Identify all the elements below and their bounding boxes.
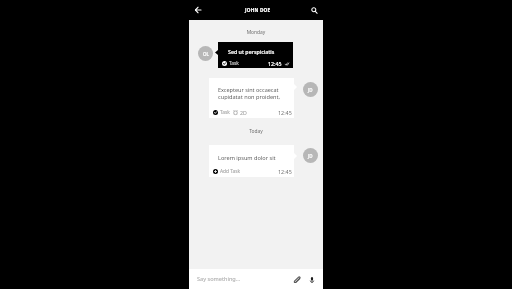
staticText: Excepteur sint occaecat <box>218 86 279 93</box>
button[interactable]: Attach file <box>291 274 302 285</box>
staticText: 12:45 <box>278 109 292 116</box>
staticText: Monday <box>189 29 323 36</box>
staticText: Sed ut perspiciatis <box>228 48 275 55</box>
button[interactable]: Search <box>308 4 320 16</box>
staticText: Today <box>189 128 323 135</box>
staticText: cupidatat non proident, <box>218 93 281 101</box>
staticText: JD <box>308 153 313 159</box>
staticText: OL <box>203 51 209 57</box>
button[interactable]: Back <box>192 4 204 16</box>
button[interactable]: Lorem ipsum dolor sit <box>209 145 294 177</box>
button[interactable]: JD <box>303 82 318 97</box>
staticText: 12:45 <box>278 168 292 175</box>
button[interactable]: JD <box>303 148 318 163</box>
button[interactable]: Say something... <box>197 275 241 283</box>
staticText: JD <box>308 87 313 93</box>
staticText: Add Task <box>220 168 241 175</box>
button[interactable]: Voice message <box>306 274 317 285</box>
staticText: JOHN DOE <box>245 7 271 13</box>
button[interactable]: OL <box>198 46 213 61</box>
button[interactable]: Excepteur sint occaecat <box>209 78 294 118</box>
button[interactable]: Sed ut perspiciatis <box>218 42 293 68</box>
staticText: 12:45 <box>268 60 282 67</box>
staticText: Task <box>229 60 239 67</box>
staticText: Lorem ipsum dolor sit <box>218 154 276 162</box>
staticText: 2D <box>240 109 247 116</box>
staticText: Task <box>220 109 230 116</box>
